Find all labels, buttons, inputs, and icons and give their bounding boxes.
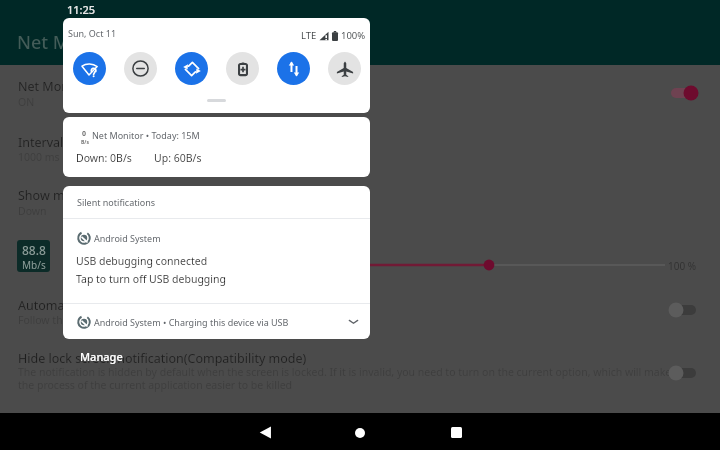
button[interactable]: Wi-Fi	[73, 52, 106, 85]
button[interactable]: Toggle off	[668, 301, 698, 319]
staticText: Tap to turn off USB debugging	[76, 272, 226, 286]
staticText: ON	[18, 95, 35, 109]
button[interactable]: Toggle off	[668, 364, 698, 382]
staticText: 100%	[341, 29, 366, 42]
staticText: 100 %	[668, 259, 697, 273]
staticText: 0	[82, 129, 87, 139]
staticText: The notification is hidden by default wh…	[18, 365, 672, 379]
staticText: B/s	[81, 139, 89, 146]
staticText: Android System • Charging this device vi…	[94, 316, 289, 328]
button[interactable]: Silent notifications	[63, 186, 370, 218]
staticText: Hide lock screen notification(Compatibil…	[18, 350, 307, 367]
button[interactable]: Home	[336, 413, 384, 450]
staticText: Manage	[80, 349, 123, 364]
staticText: Silent notifications	[77, 196, 156, 208]
button[interactable]: Auto rotate	[175, 52, 208, 85]
button[interactable]: 0	[63, 117, 370, 177]
button[interactable]: Recents	[432, 413, 480, 450]
staticText: Mb/s	[22, 258, 46, 272]
staticText: 88.8	[22, 242, 46, 258]
staticText: 1000 ms	[18, 150, 60, 164]
button[interactable]: Back	[241, 413, 289, 450]
staticText: Follow the system	[18, 313, 107, 327]
staticText: Net Monitor • Today: 15M	[92, 129, 200, 141]
staticText: Net Monitor	[17, 30, 123, 55]
button[interactable]: Android System • Charging this device vi…	[63, 304, 370, 339]
staticText: Automatic	[18, 297, 79, 314]
staticText: Down: 0B/s	[76, 151, 132, 165]
staticText: Down	[18, 204, 47, 218]
button[interactable]: Mobile data	[277, 52, 310, 85]
other: Expand	[348, 316, 359, 327]
staticText: Android System	[94, 232, 161, 244]
staticText: LTE	[301, 29, 317, 42]
staticText: the process of the current application e…	[18, 378, 293, 392]
staticText: Net Monitor	[18, 78, 90, 95]
staticText: 11:25	[67, 2, 96, 17]
staticText: Sun, Oct 11	[68, 27, 117, 39]
staticText: Interval	[18, 134, 64, 151]
button[interactable]: Airplane mode	[328, 52, 361, 85]
button[interactable]: Toggle on	[668, 84, 698, 102]
button[interactable]: Android System	[63, 219, 370, 303]
button[interactable]: Do not disturb	[124, 52, 157, 85]
button[interactable]: Battery saver	[226, 52, 259, 85]
staticText: USB debugging connected	[76, 254, 208, 268]
button[interactable]: Manage	[80, 349, 123, 364]
staticText: Up: 60B/s	[154, 151, 202, 165]
staticText: Show mode	[18, 187, 87, 204]
